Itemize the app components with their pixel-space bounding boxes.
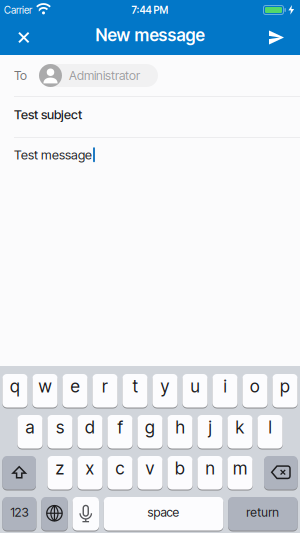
button[interactable]: 123 [2,496,36,531]
button[interactable]: n [197,455,223,490]
staticText: return [246,505,279,520]
button[interactable]: return [228,496,298,531]
staticText: f [117,417,122,438]
staticText: p [280,376,290,397]
staticText: To [14,68,27,83]
staticText: Carrier [4,4,32,16]
staticText: o [250,376,260,397]
staticText: a [25,417,34,438]
button[interactable]: i [212,373,238,408]
staticText: space [148,505,180,520]
staticText: i [223,376,226,397]
button[interactable]: Close [6,21,42,54]
staticText: k [235,417,244,438]
staticText: z [55,458,64,479]
staticText: j [208,417,211,438]
button[interactable]: y [152,373,178,408]
staticText: x [85,458,94,479]
button[interactable]: Send [257,20,296,54]
button[interactable]: m [227,455,253,490]
button[interactable]: r [92,373,118,408]
staticText: b [175,458,185,479]
button[interactable]: f [107,414,133,449]
button[interactable]: s [47,414,73,449]
button[interactable]: a [17,414,43,449]
button[interactable]: l [257,414,283,449]
button[interactable]: q [2,373,28,408]
button[interactable]: Next keyboard [41,496,68,531]
staticText: e [70,376,79,397]
button[interactable]: Administrator [39,64,158,87]
staticText: t [132,376,137,397]
button[interactable]: Shift [2,455,36,490]
button[interactable]: b [167,455,193,490]
button[interactable]: u [182,373,208,408]
staticText: New message [95,25,204,45]
staticText: d [85,417,95,438]
button[interactable]: v [137,455,163,490]
button[interactable]: h [167,414,193,449]
staticText: Test subject [14,107,82,122]
button[interactable]: d [77,414,103,449]
staticText: w [38,376,51,397]
staticText: Test message [14,147,92,162]
staticText: v [145,458,154,479]
button[interactable]: j [197,414,223,449]
button[interactable]: c [107,455,133,490]
staticText: y [160,376,169,397]
staticText: n [205,458,214,479]
staticText: m [233,458,247,479]
button[interactable]: o [242,373,268,408]
staticText: c [115,458,124,479]
staticText: l [268,417,271,438]
button[interactable]: z [47,455,73,490]
button[interactable]: Dictate [72,496,99,531]
button[interactable]: space [104,496,223,531]
button[interactable]: g [137,414,163,449]
staticText: u [190,376,199,397]
button[interactable]: Delete [264,455,298,490]
staticText: h [175,417,184,438]
button[interactable]: Message body [0,138,300,162]
staticText: 7:44 PM [131,4,168,16]
button[interactable]: k [227,414,253,449]
button[interactable]: w [32,373,58,408]
button[interactable]: e [62,373,88,408]
button[interactable]: p [272,373,298,408]
staticText: Administrator [69,68,140,83]
staticText: s [56,417,64,438]
button[interactable]: Subject [0,97,300,137]
staticText: 123 [10,505,28,520]
staticText: g [145,417,155,438]
staticText: q [10,376,20,397]
button[interactable]: To [0,55,300,96]
button[interactable]: t [122,373,148,408]
staticText: r [102,376,108,397]
button[interactable]: x [77,455,103,490]
